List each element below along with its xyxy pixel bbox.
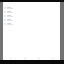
button[interactable]: Chat [18,57,32,60]
button[interactable]: Mail [3,57,18,60]
button[interactable]: Spaces [32,57,46,60]
button[interactable] [3,18,60,22]
button[interactable] [3,14,60,18]
button[interactable] [3,10,60,14]
button[interactable] [3,6,60,10]
button[interactable] [3,22,60,26]
button[interactable]: Meet [46,57,60,60]
